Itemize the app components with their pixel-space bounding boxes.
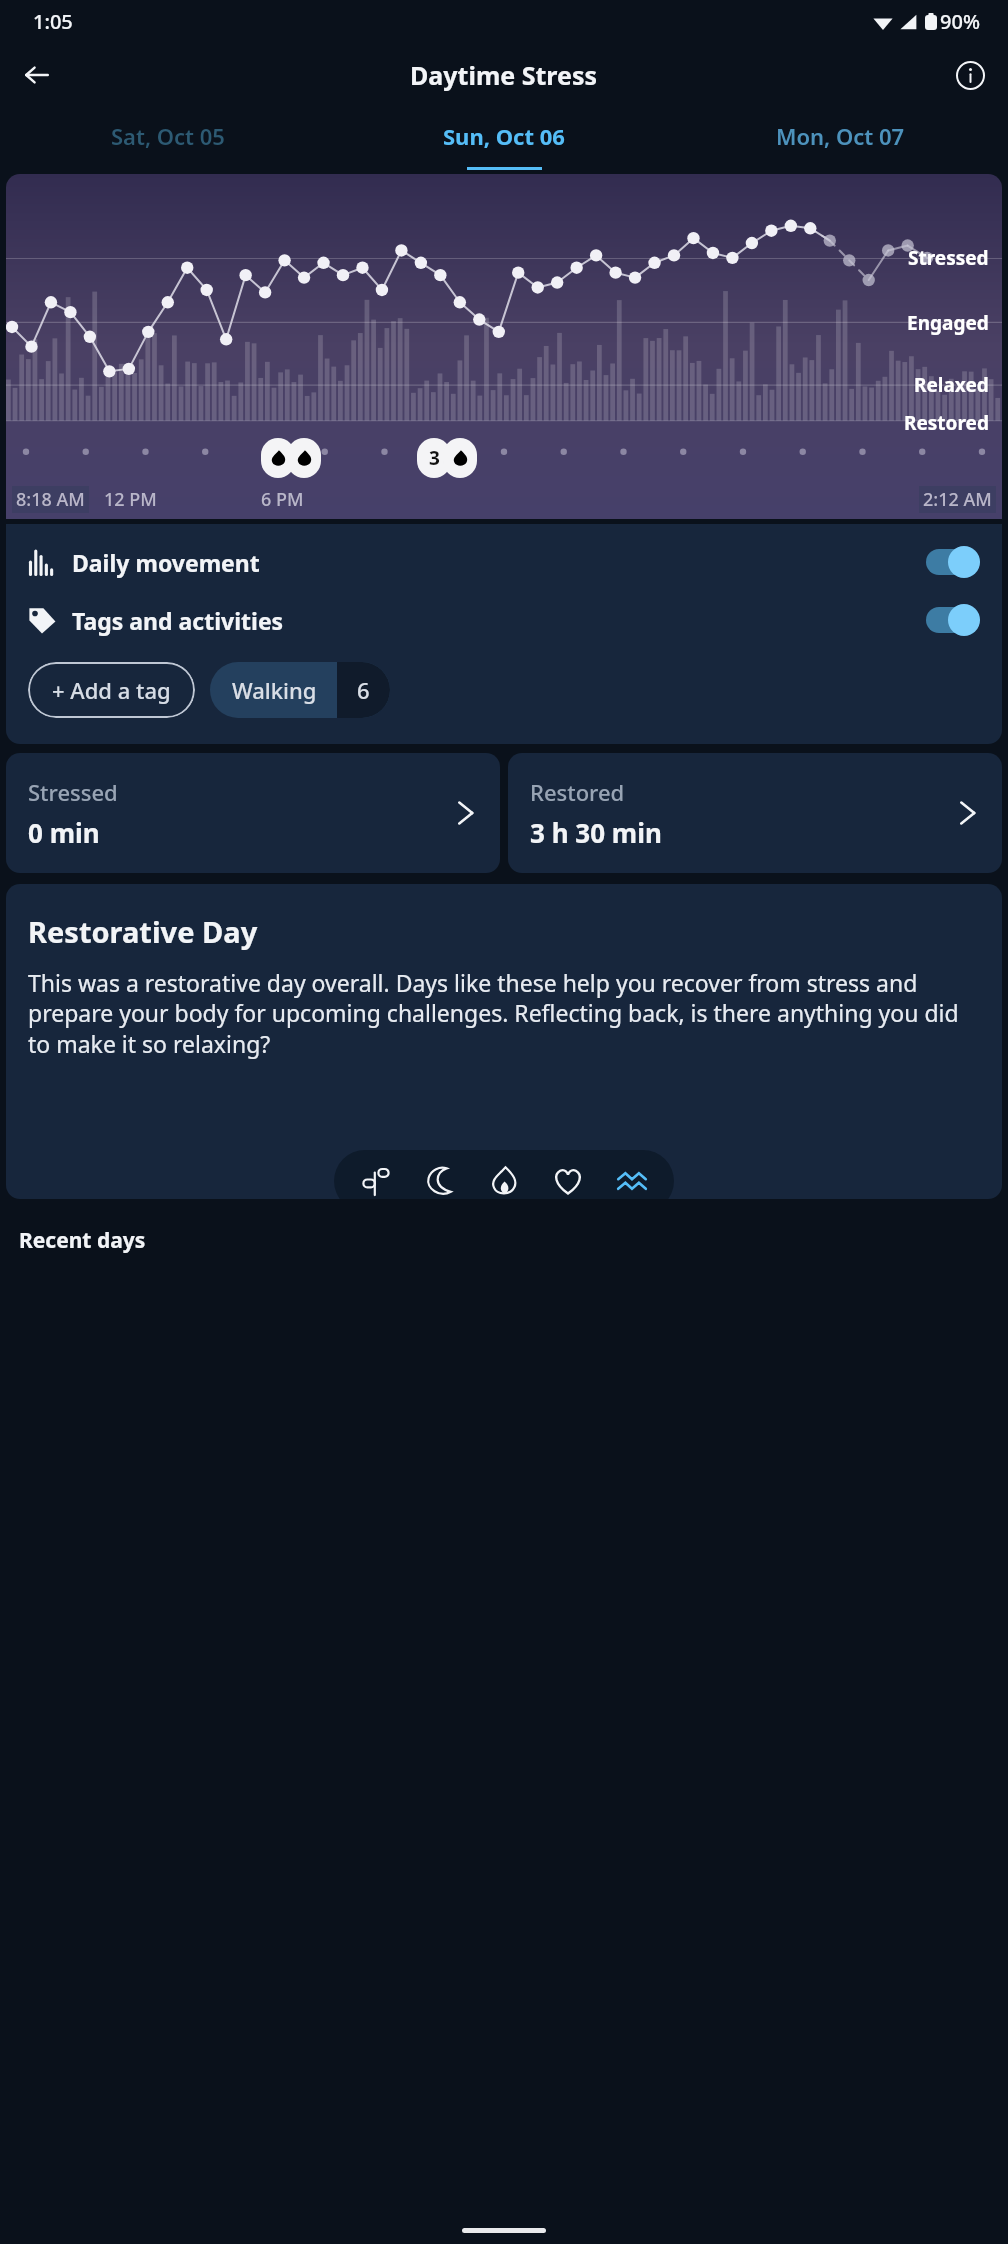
button[interactable]: Waves <box>610 1159 654 1199</box>
staticText: Sun, Oct 06 <box>443 121 565 151</box>
staticText: Restored <box>530 777 625 807</box>
staticText: Stressed <box>908 245 989 271</box>
staticText: This was a restorative day overall. Days… <box>28 967 980 1060</box>
staticText: Daily movement <box>72 547 260 578</box>
button[interactable]: Mon, Oct 07 <box>672 108 1008 164</box>
staticText: + Add a tag <box>52 675 171 705</box>
staticText: Relaxed <box>914 372 989 398</box>
staticText: Recent days <box>19 1226 146 1255</box>
button[interactable]: + Add a tag <box>28 662 195 718</box>
button[interactable]: Toggle <box>922 546 980 578</box>
staticText: Tags and activities <box>72 605 284 636</box>
staticText: 0 min <box>28 815 100 850</box>
button[interactable]: Walking <box>210 662 390 718</box>
staticText: 6 PM <box>261 487 304 512</box>
button[interactable]: Sat, Oct 05 <box>0 108 336 164</box>
staticText: 90% <box>940 8 980 35</box>
staticText: Restored <box>904 410 989 436</box>
staticText: Stressed <box>28 777 118 807</box>
button[interactable]: Tags and activities <box>28 604 980 636</box>
button[interactable]: Stressed <box>6 753 500 873</box>
staticText: Engaged <box>907 310 989 336</box>
staticText: 2:12 AM <box>923 487 992 512</box>
button[interactable]: Sleep <box>418 1159 462 1199</box>
button[interactable]: Back <box>14 52 60 98</box>
button[interactable]: Heart <box>546 1159 590 1199</box>
staticText: Restorative Day <box>28 912 258 951</box>
staticText: 8:18 AM <box>16 487 85 512</box>
button[interactable]: Daily movement <box>28 546 980 578</box>
button[interactable]: Plant <box>354 1159 398 1199</box>
button[interactable]: Stressed <box>6 174 1002 519</box>
staticText: Sat, Oct 05 <box>111 121 225 151</box>
staticText: 3 <box>429 445 440 471</box>
button[interactable]: Stress <box>482 1159 526 1199</box>
staticText: 3 h 30 min <box>530 815 662 850</box>
button[interactable]: Toggle <box>922 604 980 636</box>
staticText: Daytime Stress <box>410 58 598 92</box>
button[interactable]: Restored <box>508 753 1002 873</box>
button[interactable]: Info <box>947 52 993 98</box>
staticText: 12 PM <box>104 487 157 512</box>
staticText: Mon, Oct 07 <box>776 121 905 151</box>
staticText: Walking <box>232 675 317 705</box>
button[interactable]: Sun, Oct 06 <box>336 108 672 164</box>
staticText: 1:05 <box>33 8 73 35</box>
staticText: 6 <box>357 675 370 705</box>
